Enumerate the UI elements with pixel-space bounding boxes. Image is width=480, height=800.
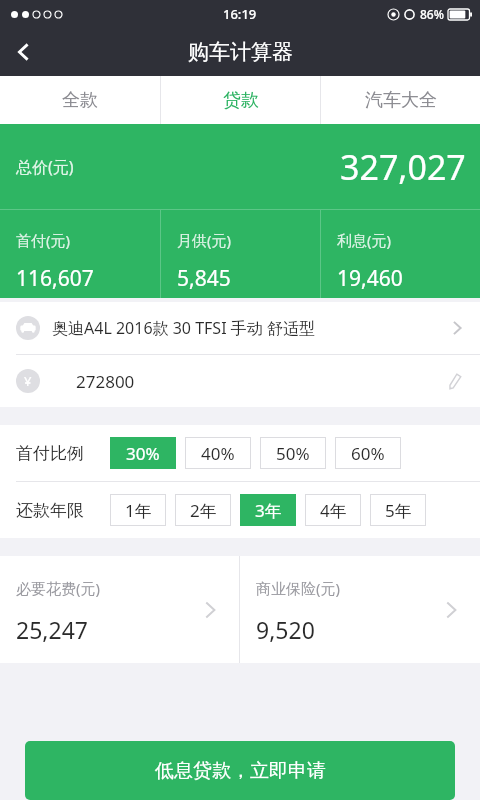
staticText: 首付比例	[16, 443, 84, 464]
other: Edit price	[446, 372, 464, 390]
staticText: 5,845	[177, 264, 231, 293]
staticText: 奥迪A4L 2016款 30 TFSI 手动 舒适型	[52, 317, 448, 339]
button[interactable]: 2年	[175, 494, 231, 526]
staticText: 25,247	[16, 614, 88, 645]
staticText: 60%	[351, 442, 385, 465]
staticText: 116,607	[16, 264, 94, 293]
button[interactable]: 全款	[0, 76, 160, 124]
staticText: 3年	[255, 499, 282, 522]
staticText: 1年	[125, 499, 152, 522]
button[interactable]: ¥	[0, 355, 480, 407]
staticText: 16:19	[223, 5, 257, 23]
staticText: 贷款	[223, 89, 259, 112]
staticText: 购车计算器	[188, 39, 293, 65]
staticText: 86%	[420, 6, 444, 22]
button[interactable]: 汽车大全	[321, 76, 480, 124]
staticText: 50%	[276, 442, 310, 465]
staticText: 4年	[320, 499, 347, 522]
staticText: 汽车大全	[365, 89, 437, 112]
button[interactable]: 5年	[370, 494, 426, 526]
staticText: 总价(元)	[16, 156, 74, 178]
staticText: 5年	[385, 499, 412, 522]
staticText: 9,520	[256, 614, 315, 645]
staticText: 327,027	[340, 144, 466, 190]
staticText: ¥	[24, 372, 32, 390]
button[interactable]: 必要花费(元)	[0, 556, 239, 663]
button[interactable]: 贷款	[161, 76, 320, 124]
staticText: 月供(元)	[177, 230, 232, 250]
button[interactable]: 60%	[335, 437, 401, 469]
button[interactable]: Back	[0, 28, 48, 76]
staticText: 2年	[190, 499, 217, 522]
staticText: 利息(元)	[337, 230, 392, 250]
button[interactable]: 40%	[185, 437, 251, 469]
staticText: 272800	[76, 370, 446, 393]
staticText: 还款年限	[16, 500, 84, 521]
staticText: 全款	[62, 89, 98, 112]
button[interactable]: 1年	[110, 494, 166, 526]
staticText: 19,460	[337, 264, 403, 293]
button[interactable]: 3年	[240, 494, 296, 526]
button[interactable]: 奥迪A4L 2016款 30 TFSI 手动 舒适型	[0, 302, 480, 354]
button[interactable]: 4年	[305, 494, 361, 526]
staticText: 40%	[201, 442, 235, 465]
staticText: 低息贷款，立即申请	[155, 759, 326, 783]
staticText: 必要花费(元)	[16, 578, 101, 598]
staticText: 首付(元)	[16, 230, 71, 250]
button[interactable]: 50%	[260, 437, 326, 469]
button[interactable]: 30%	[110, 437, 176, 469]
button[interactable]: 商业保险(元)	[240, 556, 480, 663]
staticText: 30%	[126, 442, 160, 465]
button[interactable]: 低息贷款，立即申请	[25, 741, 455, 800]
staticText: 商业保险(元)	[256, 578, 341, 598]
